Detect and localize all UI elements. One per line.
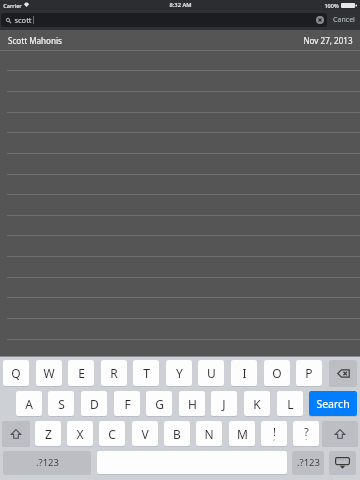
staticText: F (124, 396, 131, 412)
button[interactable]: D (81, 391, 107, 416)
staticText: L (287, 396, 294, 412)
staticText: . (305, 433, 307, 442)
staticText: X (76, 426, 84, 442)
button[interactable]: ? (293, 421, 319, 446)
staticText: Search (316, 397, 350, 411)
staticText: Nov 27, 2013 (303, 35, 353, 46)
staticText: E (78, 365, 85, 381)
button[interactable]: Shift (2, 421, 30, 446)
button[interactable]: J (211, 391, 237, 416)
button[interactable]: Shift (322, 421, 358, 446)
button[interactable]: U (198, 360, 224, 386)
button[interactable]: Cancel (328, 12, 359, 28)
staticText: Z (45, 426, 52, 442)
staticText: Scott Mahonis (8, 35, 62, 46)
button[interactable]: B (164, 421, 190, 446)
staticText: K (253, 396, 261, 412)
staticText: J (222, 396, 226, 412)
staticText: I (242, 365, 247, 381)
button[interactable]: I (231, 360, 257, 386)
button[interactable]: K (244, 391, 270, 416)
button[interactable]: Backspace (329, 360, 357, 386)
button[interactable]: L (277, 391, 303, 416)
button[interactable]: Scott Mahonis (0, 30, 360, 50)
button[interactable]: Hide keyboard (329, 451, 356, 474)
staticText: C (108, 426, 116, 442)
button[interactable]: C (99, 421, 125, 446)
staticText: P (305, 365, 313, 381)
button[interactable]: W (36, 360, 62, 386)
button[interactable]: G (146, 391, 172, 416)
staticText: M (237, 426, 248, 442)
staticText: D (90, 396, 99, 412)
staticText: W (43, 365, 55, 381)
button[interactable]: F (114, 391, 140, 416)
staticText: N (204, 426, 214, 442)
button[interactable]: P (296, 360, 322, 386)
button[interactable]: V (132, 421, 158, 446)
button[interactable]: T (133, 360, 159, 386)
staticText: B (173, 426, 181, 442)
button[interactable]: A (16, 391, 42, 416)
staticText: A (25, 396, 33, 412)
button[interactable]: X (67, 421, 93, 446)
staticText: Cancel (333, 15, 355, 25)
staticText: O (272, 365, 282, 381)
staticText: ! (273, 424, 276, 439)
staticText: Y (176, 365, 183, 381)
button[interactable]: Y (166, 360, 192, 386)
staticText: G (155, 396, 164, 412)
staticText: V (141, 426, 149, 442)
button[interactable]: H (179, 391, 205, 416)
staticText: S (58, 396, 65, 412)
button[interactable]: O (264, 360, 290, 386)
button[interactable]: M (229, 421, 255, 446)
button[interactable]: Clear text (316, 16, 324, 24)
staticText: U (207, 365, 216, 381)
button[interactable]: Z (35, 421, 61, 446)
staticText: R (110, 365, 118, 381)
staticText: Q (11, 365, 21, 381)
button[interactable]: .?123 (3, 451, 91, 474)
staticText: Carrier (3, 2, 22, 9)
staticText: H (188, 396, 197, 412)
staticText: T (143, 365, 150, 381)
button[interactable]: scott (1, 13, 327, 27)
button[interactable]: Q (3, 360, 29, 386)
button[interactable]: ! (261, 421, 287, 446)
button[interactable]: N (196, 421, 222, 446)
button[interactable]: S (48, 391, 74, 416)
staticText: 8:32 AM (169, 1, 192, 9)
button[interactable]: Search (309, 391, 357, 416)
button[interactable]: R (101, 360, 127, 386)
staticText: 100% (324, 2, 339, 9)
staticText: scott (14, 15, 32, 25)
staticText: , (273, 433, 275, 442)
staticText: .?123 (297, 456, 320, 469)
button[interactable]: .?123 (292, 451, 324, 474)
staticText: .?123 (36, 456, 59, 469)
button[interactable]: E (68, 360, 94, 386)
staticText: ? (304, 424, 309, 439)
